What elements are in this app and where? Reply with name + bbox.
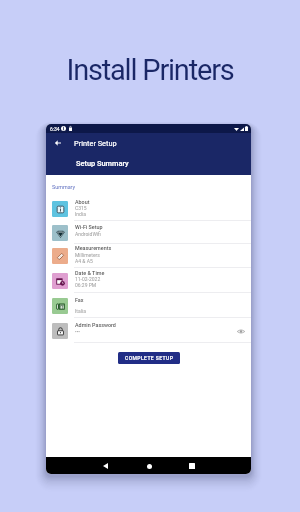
staticText: Install Printers bbox=[0, 53, 300, 87]
button[interactable]: Show password bbox=[236, 326, 246, 336]
staticText: COMPLETE SETUP bbox=[125, 355, 174, 361]
staticText: Millimeters bbox=[75, 252, 100, 258]
button[interactable]: Measurements bbox=[46, 244, 251, 268]
button[interactable]: Home bbox=[144, 461, 154, 471]
staticText: 06:29 PM bbox=[75, 282, 97, 288]
button[interactable]: Back bbox=[100, 461, 110, 471]
staticText: Summary bbox=[52, 184, 75, 190]
staticText: Setup Summary bbox=[76, 159, 129, 168]
staticText: A4 & A5 bbox=[75, 258, 93, 264]
button[interactable]: Admin Password bbox=[46, 318, 251, 343]
staticText: C315 bbox=[75, 205, 87, 211]
button[interactable]: Date & Time bbox=[46, 268, 251, 293]
staticText: Admin Password bbox=[75, 322, 116, 328]
button[interactable]: About bbox=[46, 196, 251, 221]
staticText: 11-02-2022 bbox=[75, 276, 101, 282]
staticText: Wi-Fi Setup bbox=[75, 224, 103, 230]
button[interactable]: COMPLETE SETUP bbox=[118, 352, 180, 364]
staticText: AndroidWifi bbox=[75, 231, 101, 237]
staticText: Date & Time bbox=[75, 270, 105, 276]
staticText: About bbox=[75, 199, 90, 205]
staticText: Italia bbox=[75, 308, 86, 314]
staticText: Printer Setup bbox=[74, 139, 117, 148]
button[interactable]: Wi-Fi Setup bbox=[46, 221, 251, 244]
staticText: ••• bbox=[75, 329, 81, 335]
staticText: Fax bbox=[75, 297, 84, 303]
staticText: India bbox=[75, 211, 86, 217]
button[interactable]: Fax bbox=[46, 293, 251, 318]
button[interactable]: Recents bbox=[187, 461, 197, 471]
staticText: 6:34 bbox=[50, 126, 60, 132]
button[interactable]: Back bbox=[51, 136, 65, 150]
staticText: Measurements bbox=[75, 245, 112, 251]
